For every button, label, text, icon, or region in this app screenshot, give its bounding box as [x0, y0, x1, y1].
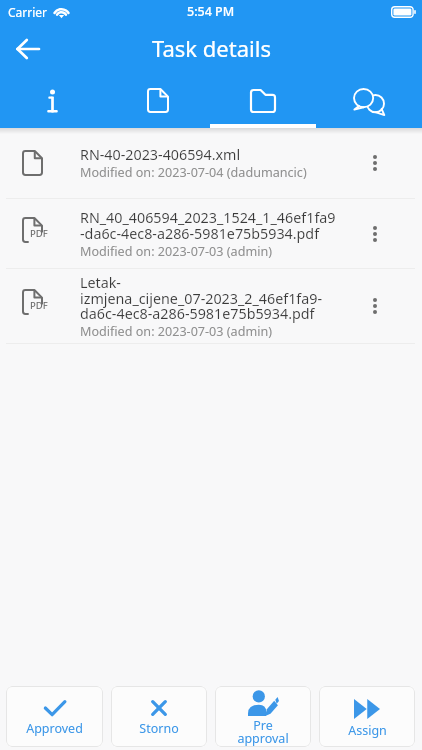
staticText: Carrier: [8, 4, 48, 20]
button[interactable]: Chat: [316, 71, 422, 128]
staticText: RN-40-2023-406594.xml: [80, 145, 241, 164]
staticText: Approved: [26, 720, 83, 737]
staticText: Letak- izmjena_cijene_07-2023_2_46ef1fa9…: [80, 273, 323, 323]
staticText: PDF: [30, 299, 48, 312]
staticText: Modified on: 2023-07-03 (admin): [80, 243, 272, 260]
staticText: Storno: [139, 720, 179, 737]
button[interactable]: Pre approval: [215, 686, 311, 747]
button[interactable]: Assign: [319, 686, 415, 747]
staticText: RN_40_406594_2023_1524_1_46ef1fa9 -da6c-…: [80, 208, 336, 243]
button[interactable]: Documents: [105, 71, 210, 128]
button[interactable]: Files: [210, 71, 316, 128]
staticText: PDF: [30, 227, 48, 240]
button[interactable]: More options: [355, 287, 395, 325]
staticText: Assign: [348, 722, 387, 739]
button[interactable]: Info: [0, 71, 105, 128]
button[interactable]: Storno: [111, 686, 207, 747]
staticText: Task details: [152, 33, 271, 63]
button[interactable]: Approved: [6, 686, 103, 747]
button[interactable]: PDF: [0, 199, 422, 268]
staticText: Modified on: 2023-07-03 (admin): [80, 323, 272, 340]
button[interactable]: Back: [8, 27, 48, 67]
staticText: Pre approval: [237, 717, 289, 747]
button[interactable]: More options: [355, 215, 395, 253]
button[interactable]: PDF: [0, 269, 422, 343]
staticText: 5:54 PM: [187, 3, 235, 20]
button[interactable]: More options: [355, 144, 395, 182]
staticText: Modified on: 2023-07-04 (dadumancic): [80, 164, 307, 181]
button[interactable]: RN-40-2023-406594.xml: [0, 128, 422, 198]
